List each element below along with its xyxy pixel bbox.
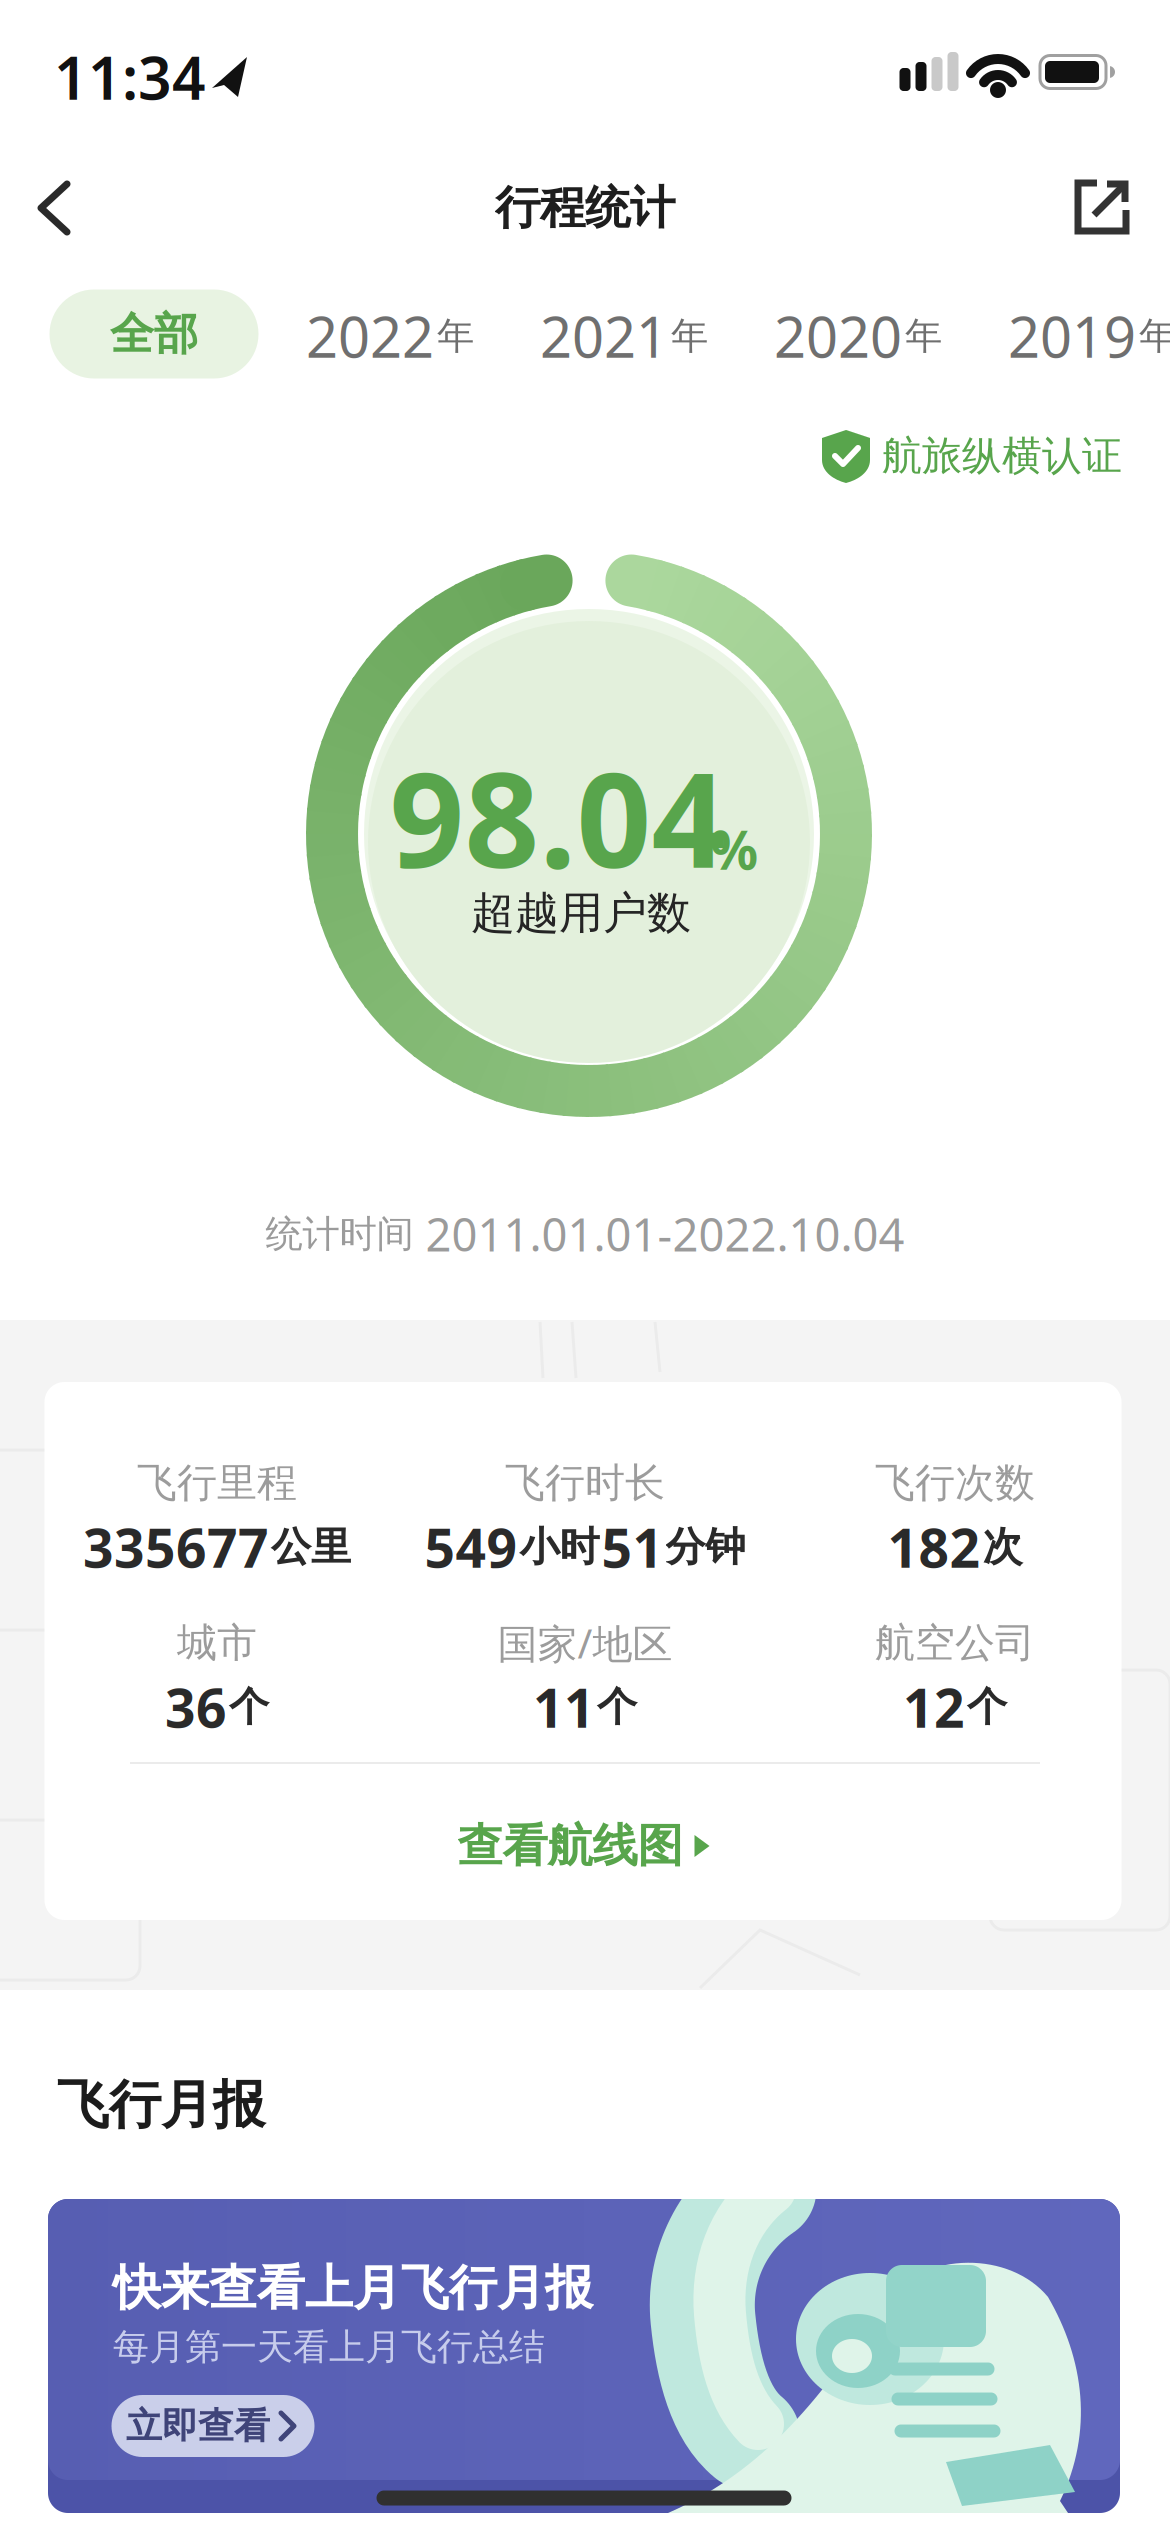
staticText: 2019 [1008, 299, 1136, 373]
staticText: 航旅纵横认证 [882, 431, 1122, 480]
staticText: 公里 [271, 1522, 351, 1571]
staticText: 全部 [110, 307, 198, 361]
staticText: 2011.01.01-2022.10.04 [425, 1204, 904, 1264]
staticText: 快来查看上月飞行月报 [113, 2258, 593, 2317]
staticText: 国家/地区 [497, 1616, 672, 1669]
staticText: 12 [903, 1672, 965, 1742]
button[interactable]: Share [1066, 172, 1136, 242]
staticText: 182 [887, 1512, 980, 1582]
staticText: 行程统计 [495, 180, 675, 236]
staticText: 航空公司 [875, 1618, 1035, 1667]
button[interactable]: 2022 [306, 299, 474, 373]
staticText: 2021 [540, 299, 668, 373]
staticText: 个 [229, 1682, 269, 1731]
staticText: 51 [601, 1512, 663, 1582]
button[interactable]: Back [24, 178, 84, 238]
staticText: 次 [982, 1522, 1022, 1571]
staticText: 飞行里程 [137, 1458, 297, 1507]
staticText: 个 [597, 1682, 637, 1731]
staticText: 年 [905, 313, 942, 359]
button[interactable]: 全部 [49, 289, 258, 378]
staticText: 飞行时长 [505, 1458, 665, 1507]
staticText: 549 [424, 1512, 517, 1582]
staticText: 2022 [306, 299, 434, 373]
staticText: 年 [1139, 313, 1170, 359]
button[interactable]: 查看航线图 [457, 1818, 712, 1874]
staticText: 每月第一天看上月飞行总结 [113, 2325, 545, 2369]
staticText: 查看航线图 [457, 1818, 682, 1874]
staticText: 飞行次数 [875, 1458, 1035, 1507]
staticText: 36 [165, 1672, 227, 1742]
button[interactable]: 快来查看上月飞行月报 [48, 2199, 1120, 2513]
button[interactable]: 2020 [774, 299, 942, 373]
staticText: 年 [671, 313, 708, 359]
staticText: 小时 [519, 1522, 599, 1571]
staticText: 个 [967, 1682, 1007, 1731]
staticText: 统计时间 [265, 1211, 413, 1257]
staticText: 11:34 [54, 38, 206, 116]
button[interactable]: 2021 [540, 299, 708, 373]
staticText: 2020 [774, 299, 902, 373]
staticText: 年 [437, 313, 474, 359]
staticText: 分钟 [665, 1522, 745, 1571]
staticText: 飞行月报 [57, 2073, 265, 2137]
staticText: 超越用户数 [471, 886, 691, 940]
staticText: 立即查看 [126, 2404, 270, 2448]
staticText: 11 [533, 1672, 595, 1742]
button[interactable]: 2019 [1008, 299, 1170, 373]
staticText: 98.04 [389, 730, 726, 904]
staticText: 335677 [83, 1512, 269, 1582]
staticText: % [710, 814, 758, 884]
staticText: 城市 [177, 1618, 257, 1667]
